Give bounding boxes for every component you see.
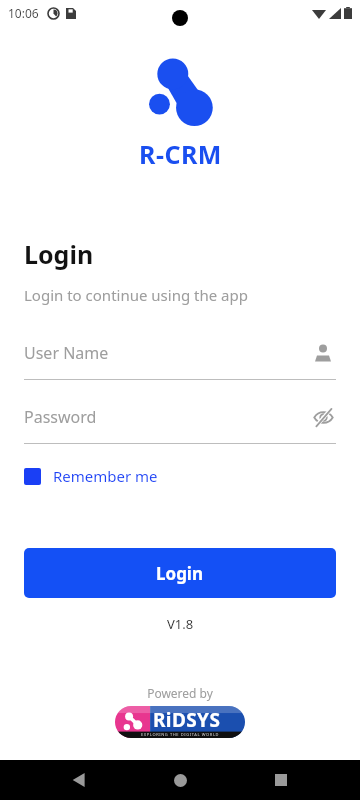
staticText: EXPLORING THE DIGITAL WORLD (141, 732, 220, 737)
staticText: Login (24, 237, 94, 271)
button[interactable]: Remember me (24, 462, 158, 490)
staticText: Login (156, 562, 204, 585)
staticText: Remember me (53, 466, 158, 486)
staticText: RiDSYS (153, 707, 221, 733)
button[interactable]: Recent apps (259, 760, 303, 800)
other: User name (310, 340, 336, 366)
staticText: Login to continue using the app (24, 285, 248, 305)
button[interactable]: Home (158, 760, 202, 800)
button[interactable]: Back (57, 760, 101, 800)
staticText: User Name (24, 342, 310, 364)
staticText: R-CRM (139, 137, 222, 171)
button[interactable]: Show password (310, 404, 336, 430)
staticText: Password (24, 406, 310, 428)
staticText: Powered by (147, 685, 213, 701)
button[interactable]: Login (24, 548, 336, 598)
staticText: 10:06 (8, 5, 39, 21)
staticText: V1.8 (167, 615, 194, 633)
